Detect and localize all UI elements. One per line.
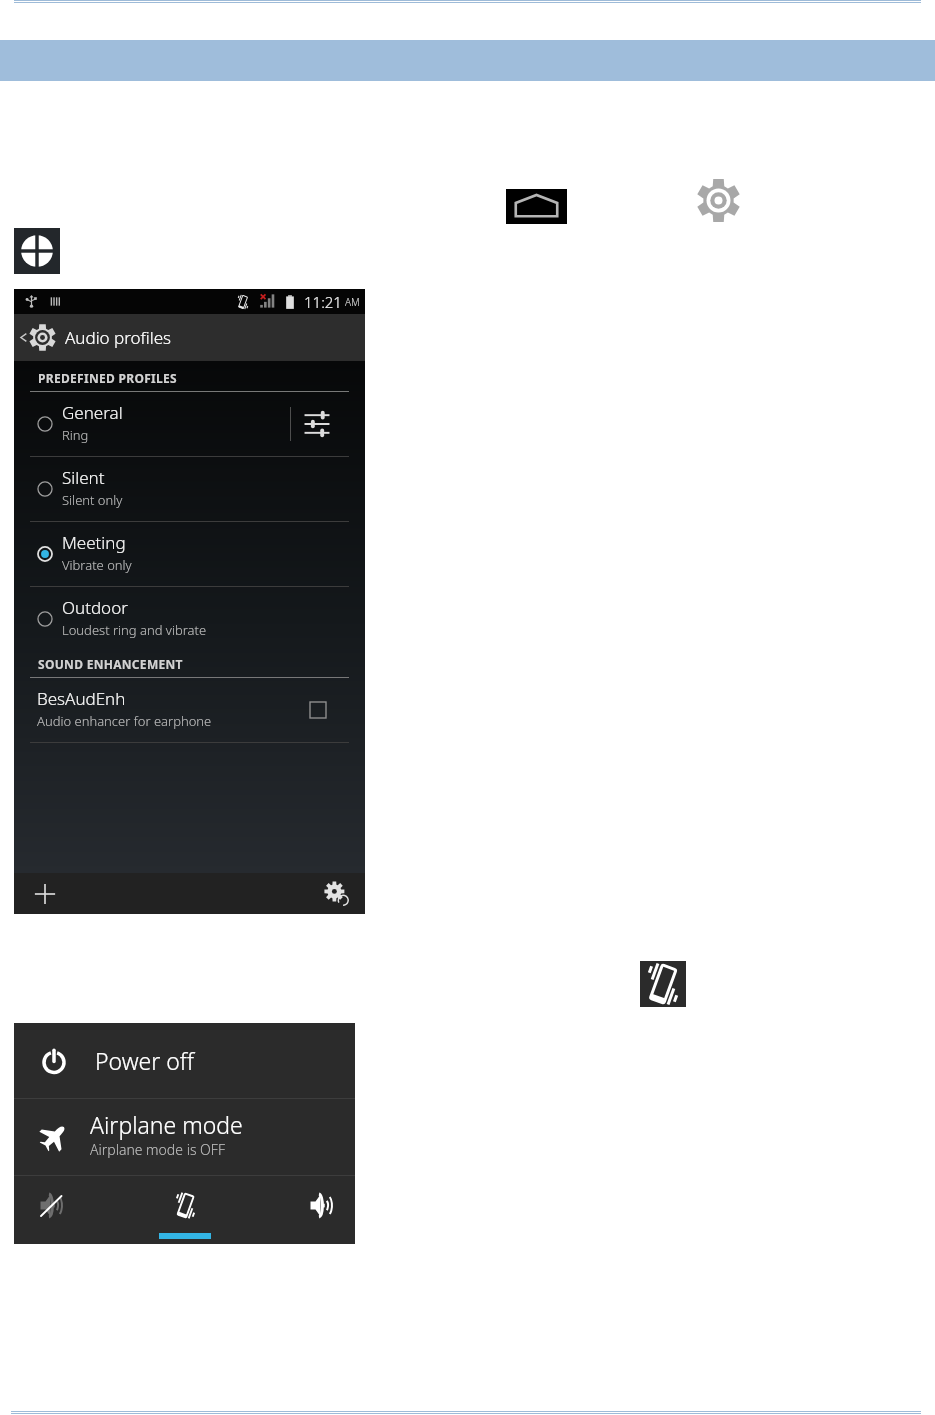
button[interactable]: Airplane mode xyxy=(14,1099,355,1175)
staticText: Vibrate only xyxy=(62,556,132,574)
button[interactable]: BesAudEnh xyxy=(14,678,365,743)
button[interactable]: Meeting xyxy=(14,522,365,587)
staticText: Ring xyxy=(62,426,89,444)
staticText: AM xyxy=(345,295,360,309)
staticText: Power off xyxy=(95,1045,195,1076)
staticText: Outdoor xyxy=(62,596,128,619)
staticText: Audio profiles xyxy=(65,326,172,349)
button[interactable]: Vibrate xyxy=(640,961,686,1007)
staticText: BesAudEnh xyxy=(37,687,126,710)
staticText: PREDEFINED PROFILES xyxy=(38,370,177,386)
staticText: 11:21 xyxy=(304,292,342,312)
staticText: Airplane mode xyxy=(90,1109,243,1140)
staticText: Meeting xyxy=(62,531,126,554)
button[interactable]: Settings xyxy=(695,177,742,224)
button[interactable]: Outdoor xyxy=(14,587,365,651)
staticText: Silent xyxy=(62,466,105,489)
button[interactable]: Target xyxy=(14,228,60,274)
button[interactable]: Power off xyxy=(14,1023,355,1098)
staticText: Airplane mode is OFF xyxy=(90,1140,225,1159)
button[interactable]: Silent xyxy=(14,1176,91,1244)
button[interactable]: General xyxy=(14,392,365,457)
button[interactable]: Profile settings xyxy=(291,392,365,456)
button[interactable]: Vibrate xyxy=(146,1176,224,1244)
staticText: General xyxy=(62,401,123,424)
button[interactable]: Add profile xyxy=(34,883,56,905)
button[interactable]: Home xyxy=(506,189,567,224)
staticText: Silent only xyxy=(62,491,123,509)
staticText: SOUND ENHANCEMENT xyxy=(38,656,183,672)
staticText: Audio enhancer for earphone xyxy=(37,712,212,730)
button[interactable]: Reset profiles xyxy=(324,881,350,907)
staticText: Loudest ring and vibrate xyxy=(62,621,207,639)
button[interactable]: Silent xyxy=(14,457,365,522)
button[interactable]: Sound xyxy=(284,1176,360,1244)
